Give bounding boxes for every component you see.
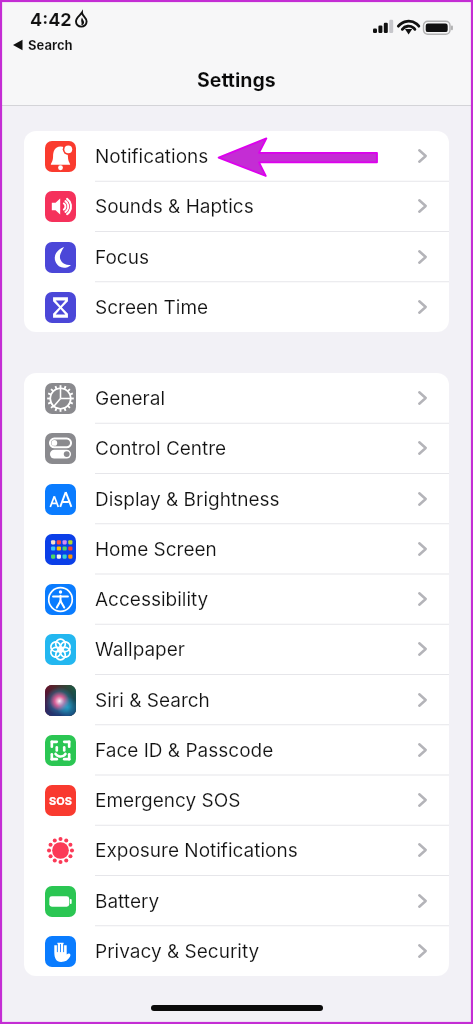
staticText: Face ID & Passcode	[95, 739, 418, 762]
button[interactable]: Face ID & Passcode	[24, 725, 449, 775]
button[interactable]: Focus	[24, 232, 449, 282]
button[interactable]: Siri & Search	[24, 675, 449, 725]
staticText: Emergency SOS	[95, 789, 418, 812]
button[interactable]: Screen Time	[24, 282, 449, 332]
staticText: Battery	[95, 890, 418, 913]
button[interactable]: Wallpaper	[24, 624, 449, 674]
staticText: Privacy & Security	[95, 940, 418, 963]
staticText: Control Centre	[95, 437, 418, 460]
button[interactable]: General	[24, 373, 449, 423]
button[interactable]: Privacy & Security	[24, 926, 449, 976]
staticText: Search	[28, 37, 73, 53]
button[interactable]: Home Screen	[24, 524, 449, 574]
staticText: Wallpaper	[95, 638, 418, 661]
staticText: Screen Time	[95, 296, 418, 319]
staticText: General	[95, 387, 418, 410]
staticText: Display & Brightness	[95, 488, 418, 511]
button[interactable]: SOS	[24, 775, 449, 825]
staticText: Accessibility	[95, 588, 418, 611]
staticText: 4:42	[30, 9, 72, 31]
button[interactable]: Sounds & Haptics	[24, 181, 449, 231]
staticText: Home Screen	[95, 538, 418, 561]
button[interactable]: Search	[13, 37, 73, 53]
staticText: Settings	[197, 68, 276, 92]
staticText: Exposure Notifications	[95, 839, 418, 862]
staticText: Notifications	[95, 145, 418, 168]
staticText: SOS	[49, 794, 72, 807]
button[interactable]: Exposure Notifications	[24, 825, 449, 875]
button[interactable]: Control Centre	[24, 423, 449, 473]
button[interactable]: Accessibility	[24, 574, 449, 624]
staticText: Siri & Search	[95, 689, 418, 712]
button[interactable]: Display & Brightness	[24, 474, 449, 524]
staticText: Sounds & Haptics	[95, 195, 418, 218]
button[interactable]: Battery	[24, 876, 449, 926]
button[interactable]: Notifications	[24, 131, 449, 181]
staticText: Focus	[95, 246, 418, 269]
